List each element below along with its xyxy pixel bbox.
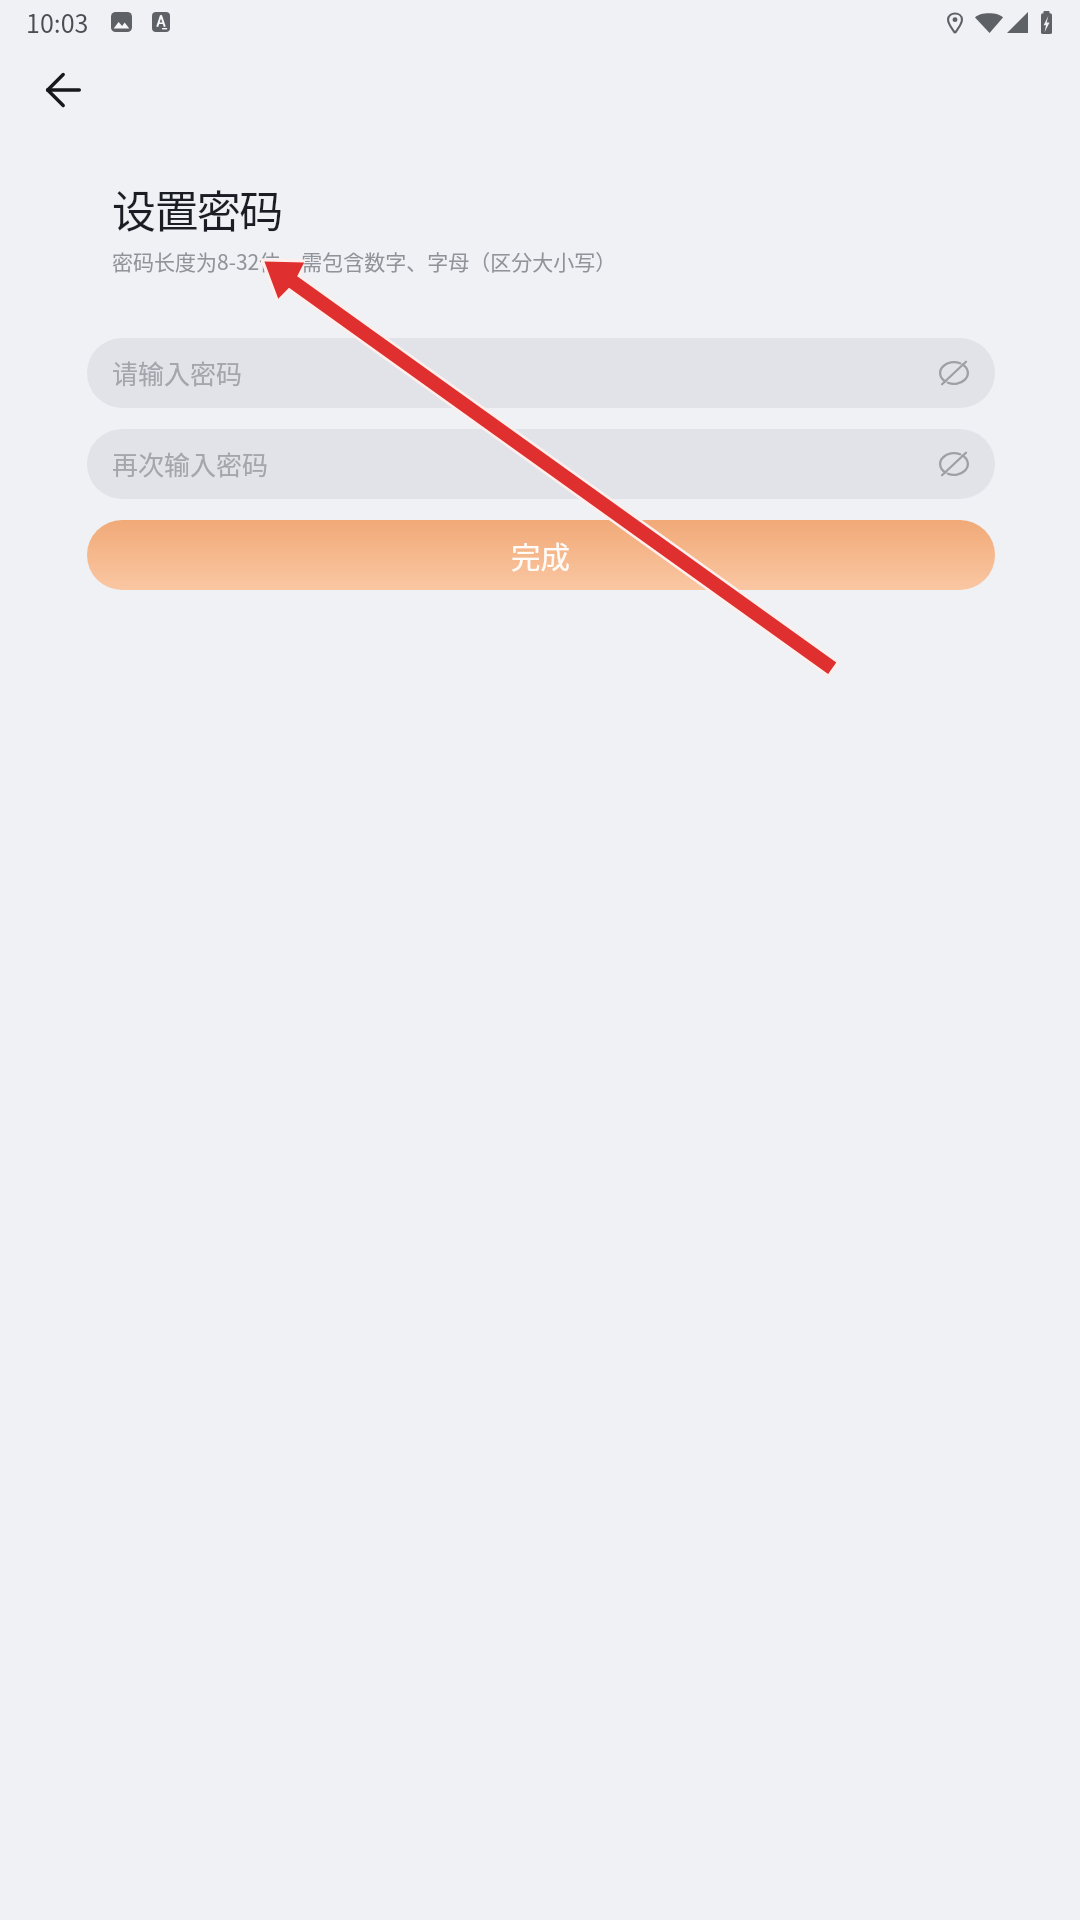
button[interactable]: 请输入密码 — [87, 338, 995, 408]
button[interactable]: 再次输入密码 — [87, 429, 995, 499]
button[interactable]: 完成 — [87, 520, 995, 590]
staticText: 密码长度为8-32位，需包含数字、字母（区分大小写） — [112, 246, 617, 276]
staticText: 10:03 — [26, 4, 89, 40]
staticText: 设置密码 — [112, 177, 282, 241]
button[interactable]: Show password — [931, 350, 977, 396]
staticText: 完成 — [511, 534, 571, 577]
button[interactable]: Back — [35, 62, 91, 118]
staticText: 再次输入密码 — [112, 445, 269, 483]
staticText: 请输入密码 — [112, 354, 243, 392]
button[interactable]: Show password — [931, 441, 977, 487]
